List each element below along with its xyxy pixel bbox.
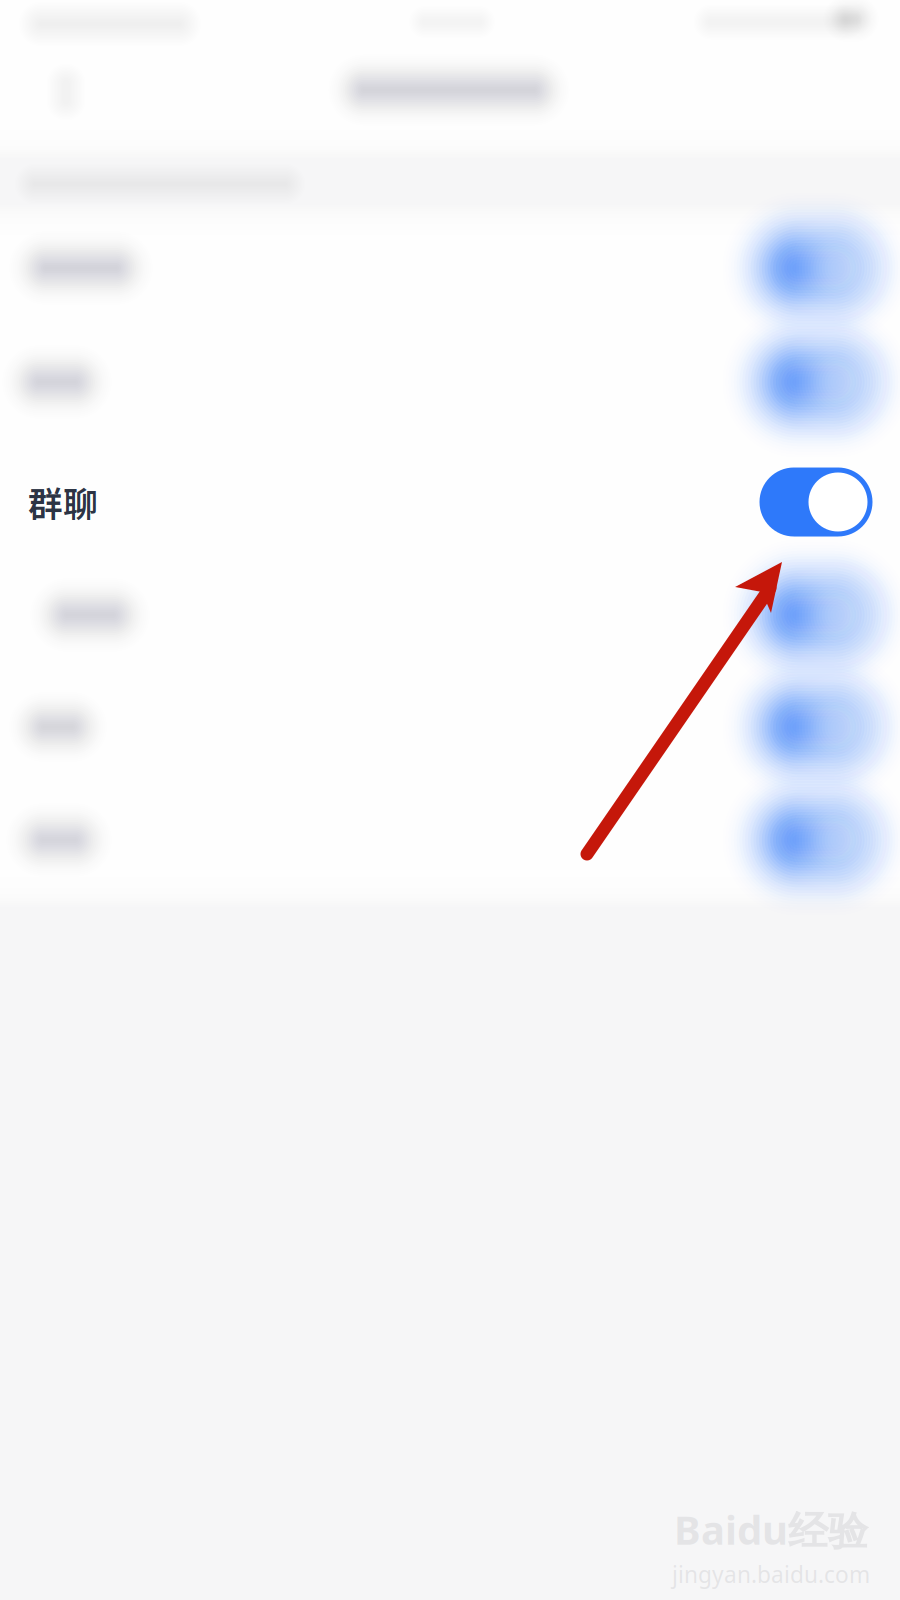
button[interactable]: 通知显示消息详情 xyxy=(0,559,900,671)
button[interactable]: 群聊 xyxy=(0,446,900,558)
button[interactable]: 接收新消息通知 xyxy=(0,212,900,324)
staticText: jingyan.baidu.com xyxy=(672,1559,870,1589)
staticText: Baidu经验 xyxy=(674,1503,868,1556)
button[interactable]: 声音 xyxy=(0,326,900,438)
button[interactable]: 视频号 xyxy=(0,784,900,896)
button[interactable]: 朋友圈 xyxy=(0,671,900,783)
staticText: 群聊 xyxy=(28,477,98,527)
